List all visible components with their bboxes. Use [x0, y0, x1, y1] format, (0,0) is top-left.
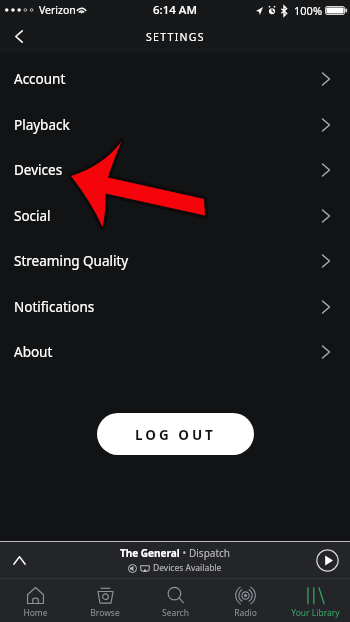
button[interactable]: Play: [316, 549, 339, 572]
button[interactable]: Streaming Quality: [0, 238, 350, 283]
staticText: Radio: [234, 607, 257, 619]
staticText: SETTINGS: [146, 30, 205, 44]
button[interactable]: Expand player: [0, 542, 42, 578]
button[interactable]: Your Library: [280, 579, 350, 622]
staticText: Devices: [14, 161, 63, 179]
staticText: • Dispatch: [180, 546, 230, 560]
button[interactable]: Browse: [70, 579, 140, 622]
staticText: Search: [162, 607, 189, 619]
staticText: Playback: [14, 116, 70, 134]
staticText: Browse: [90, 607, 120, 619]
staticText: LOG OUT: [135, 426, 216, 444]
button[interactable]: LOG OUT: [97, 413, 254, 455]
staticText: Notifications: [14, 298, 95, 316]
button[interactable]: Social: [0, 193, 350, 238]
staticText: Your Library: [291, 607, 340, 619]
button[interactable]: Notifications: [0, 284, 350, 329]
button[interactable]: Devices: [0, 147, 350, 192]
button[interactable]: Search: [140, 579, 210, 622]
staticText: Social: [14, 207, 51, 225]
staticText: About: [14, 343, 53, 361]
button[interactable]: Home: [0, 579, 70, 622]
staticText: Streaming Quality: [14, 252, 129, 270]
staticText: Devices Available: [153, 562, 222, 574]
staticText: The General: [120, 546, 180, 560]
button[interactable]: Playback: [0, 102, 350, 147]
staticText: 100%: [294, 3, 323, 18]
staticText: 6:14 AM: [153, 2, 197, 18]
button[interactable]: Back: [0, 20, 42, 49]
button[interactable]: About: [0, 329, 350, 374]
button[interactable]: Radio: [210, 579, 280, 622]
staticText: Home: [23, 607, 48, 619]
staticText: Verizon: [39, 3, 76, 17]
button[interactable]: Account: [0, 56, 350, 101]
staticText: Account: [14, 70, 66, 88]
